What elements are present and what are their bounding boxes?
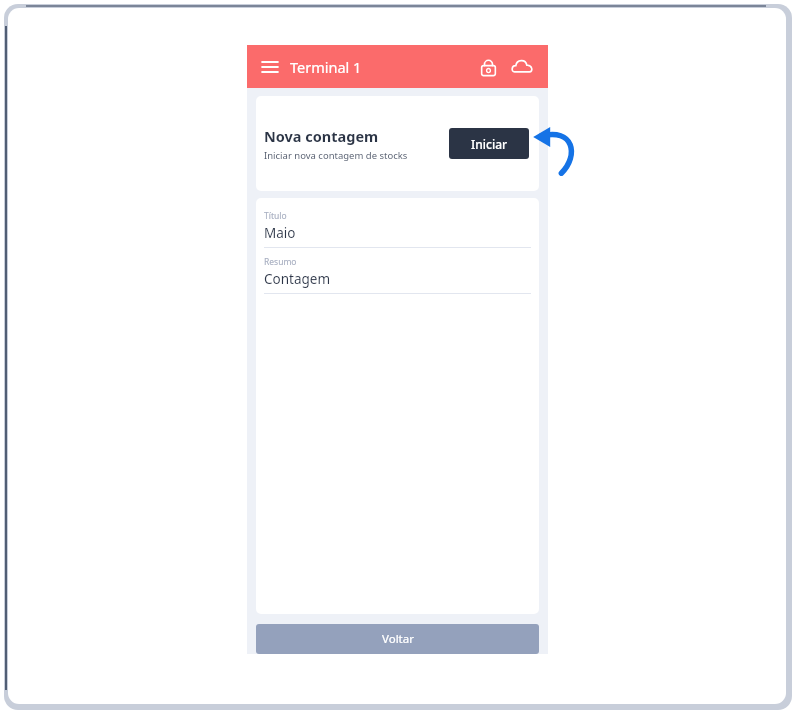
staticText: Título [264,210,287,222]
staticText: Nova contagem [264,126,379,146]
staticText: Terminal 1 [290,57,362,77]
button[interactable]: Voltar [256,624,539,654]
button[interactable]: Menu [256,53,284,81]
button[interactable]: Resumo [264,256,531,294]
button[interactable]: Lock [475,54,501,80]
staticText: Voltar [382,631,414,647]
staticText: Maio [264,224,296,242]
staticText: Resumo [264,256,297,268]
staticText: Iniciar nova contagem de stocks [264,149,408,162]
staticText: Contagem [264,270,331,288]
staticText: Iniciar [471,136,508,152]
button[interactable]: Iniciar [449,128,529,159]
button[interactable]: Título [264,210,531,248]
button[interactable]: Cloud sync [509,54,535,80]
